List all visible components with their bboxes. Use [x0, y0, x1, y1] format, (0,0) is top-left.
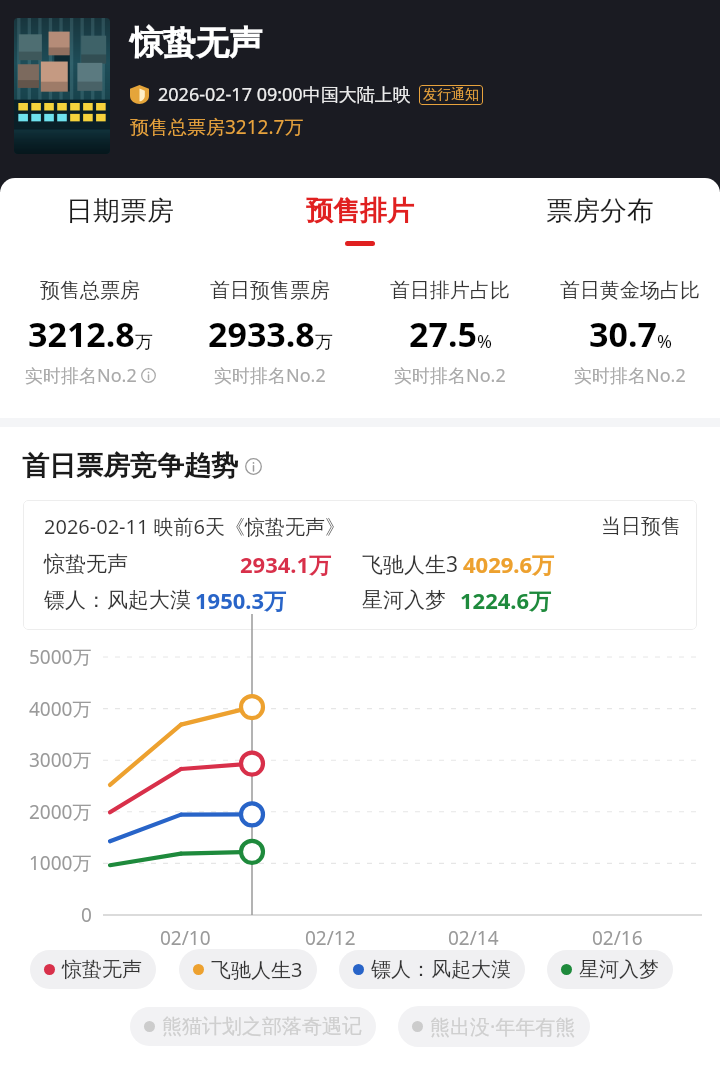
staticText: 2933.8	[208, 311, 315, 357]
button[interactable]: 镖人：风起大漠	[339, 950, 525, 989]
staticText: 日期票房	[66, 194, 174, 228]
button[interactable]: 熊猫计划之部落奇遇记	[130, 1007, 376, 1046]
button[interactable]: 星河入梦	[547, 950, 673, 989]
staticText: 惊蛰无声	[62, 957, 142, 982]
staticText: 4000万	[29, 696, 92, 722]
staticText: 实时排名No.2	[214, 363, 326, 388]
staticText: %	[477, 329, 492, 354]
staticText: 3000万	[29, 747, 92, 773]
staticText: 0	[81, 902, 92, 928]
staticText: 首日排片占比	[390, 278, 510, 303]
staticText: 02/12	[305, 925, 356, 951]
staticText: 实时排名No.2	[574, 363, 686, 388]
staticText: 1000万	[29, 850, 92, 876]
button[interactable]: 首日预售票房	[180, 278, 360, 388]
button[interactable]: 2026-02-11 映前6天《惊蛰无声》	[23, 500, 697, 630]
staticText: 1950.3万	[195, 585, 287, 615]
staticText: 发行通知	[423, 86, 479, 104]
staticText: 票房分布	[546, 194, 654, 228]
staticText: 2934.1万	[240, 549, 332, 579]
staticText: 熊出没·年年有熊	[430, 1013, 576, 1040]
staticText: 飞驰人生3	[211, 956, 303, 983]
staticText: 惊蛰无声	[130, 22, 262, 64]
button[interactable]: 发行通知	[419, 85, 483, 105]
button[interactable]: 惊蛰无声	[30, 950, 156, 989]
staticText: 镖人：风起大漠	[44, 587, 191, 613]
staticText: 3212.8	[28, 311, 135, 357]
staticText: 预售总票房3212.7万	[130, 114, 304, 140]
staticText: 首日票房竞争趋势	[22, 449, 238, 483]
staticText: 首日预售票房	[210, 278, 330, 303]
staticText: 5000万	[29, 644, 92, 670]
staticText: 2026-02-17 09:00中国大陆上映	[158, 82, 411, 107]
staticText: 02/10	[160, 925, 211, 951]
staticText: 1224.6万	[460, 585, 552, 615]
button[interactable]: 首日黄金场占比	[540, 278, 720, 388]
staticText: 02/16	[592, 925, 643, 951]
staticText: 惊蛰无声	[44, 551, 128, 577]
staticText: 4029.6万	[463, 549, 555, 579]
button[interactable]: 飞驰人生3	[179, 949, 317, 990]
button[interactable]	[14, 18, 110, 154]
staticText: 实时排名No.2	[25, 363, 137, 388]
staticText: 30.7	[589, 311, 657, 357]
staticText: %	[657, 329, 672, 354]
staticText: 实时排名No.2	[394, 363, 506, 388]
staticText: 02/14	[448, 925, 499, 951]
staticText: 星河入梦	[362, 587, 446, 613]
staticText: 当日预售	[601, 514, 681, 539]
button[interactable]: 熊出没·年年有熊	[398, 1006, 590, 1047]
staticText: 星河入梦	[579, 957, 659, 982]
staticText: 镖人：风起大漠	[371, 957, 511, 982]
button[interactable]: 票房分布	[480, 178, 720, 262]
staticText: 熊猫计划之部落奇遇记	[162, 1014, 362, 1039]
staticText: 2000万	[29, 799, 92, 825]
staticText: 预售总票房	[40, 278, 140, 303]
button[interactable]: 日期票房	[0, 178, 240, 262]
staticText: 万	[315, 331, 333, 354]
button[interactable]: 预售排片	[240, 178, 480, 262]
staticText: 首日黄金场占比	[560, 278, 700, 303]
staticText: 2026-02-11 映前6天《惊蛰无声》	[44, 513, 346, 540]
button[interactable]: 预售总票房	[0, 278, 180, 388]
staticText: 万	[135, 331, 153, 354]
staticText: 飞驰人生3	[362, 550, 459, 579]
staticText: 预售排片	[306, 194, 414, 228]
staticText: 27.5	[409, 311, 477, 357]
button[interactable]: 首日排片占比	[360, 278, 540, 388]
